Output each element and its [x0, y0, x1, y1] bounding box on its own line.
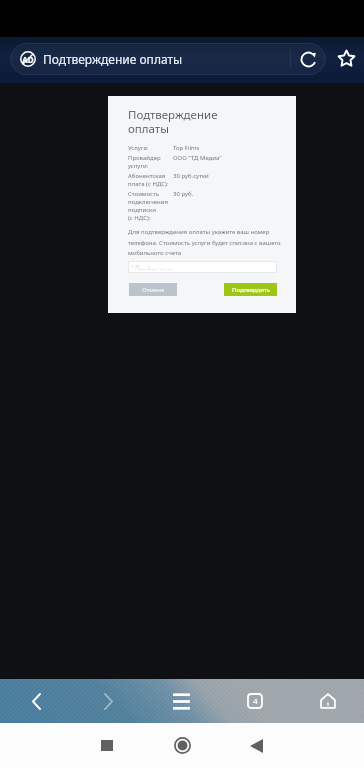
button[interactable]: Home: [174, 737, 191, 754]
staticText: +7(___)___-__-__: [131, 263, 172, 271]
staticText: 30 руб.: [173, 190, 194, 198]
staticText: Провайдер услуги:: [128, 154, 173, 170]
staticText: ООО "ТД Медиа": [173, 154, 222, 162]
staticText: AD: [22, 54, 34, 65]
button[interactable]: Меню: [145, 679, 218, 723]
button[interactable]: Вперёд: [72, 679, 145, 723]
staticText: Для подтверждения оплаты укажите ваш ном…: [128, 228, 288, 256]
staticText: Стоимость подключения подписки (с НДС):: [128, 190, 173, 222]
staticText: Подтвердить: [232, 286, 270, 294]
staticText: Абонентская плата (с НДС):: [128, 172, 173, 188]
staticText: Услуга:: [128, 144, 173, 152]
staticText: 4: [253, 696, 258, 706]
button[interactable]: AD: [10, 43, 326, 75]
staticText: Отмена: [142, 286, 165, 294]
button[interactable]: Отмена: [129, 283, 177, 296]
button[interactable]: Вкладки: 4: [218, 679, 291, 723]
button[interactable]: В закладки: [334, 46, 358, 70]
button[interactable]: Назад: [0, 679, 72, 723]
staticText: Подтверждение оплаты: [128, 107, 248, 136]
staticText: Подтверждение оплаты: [43, 51, 183, 67]
staticText: 30 руб.сутки: [173, 172, 209, 180]
button[interactable]: +7(___)___-__-__: [128, 261, 277, 273]
button[interactable]: Back: [250, 739, 263, 753]
button[interactable]: Обновить: [291, 43, 326, 75]
staticText: Top Films: [173, 144, 200, 152]
button[interactable]: Домой: [291, 679, 364, 723]
button[interactable]: Подтвердить: [224, 283, 277, 296]
